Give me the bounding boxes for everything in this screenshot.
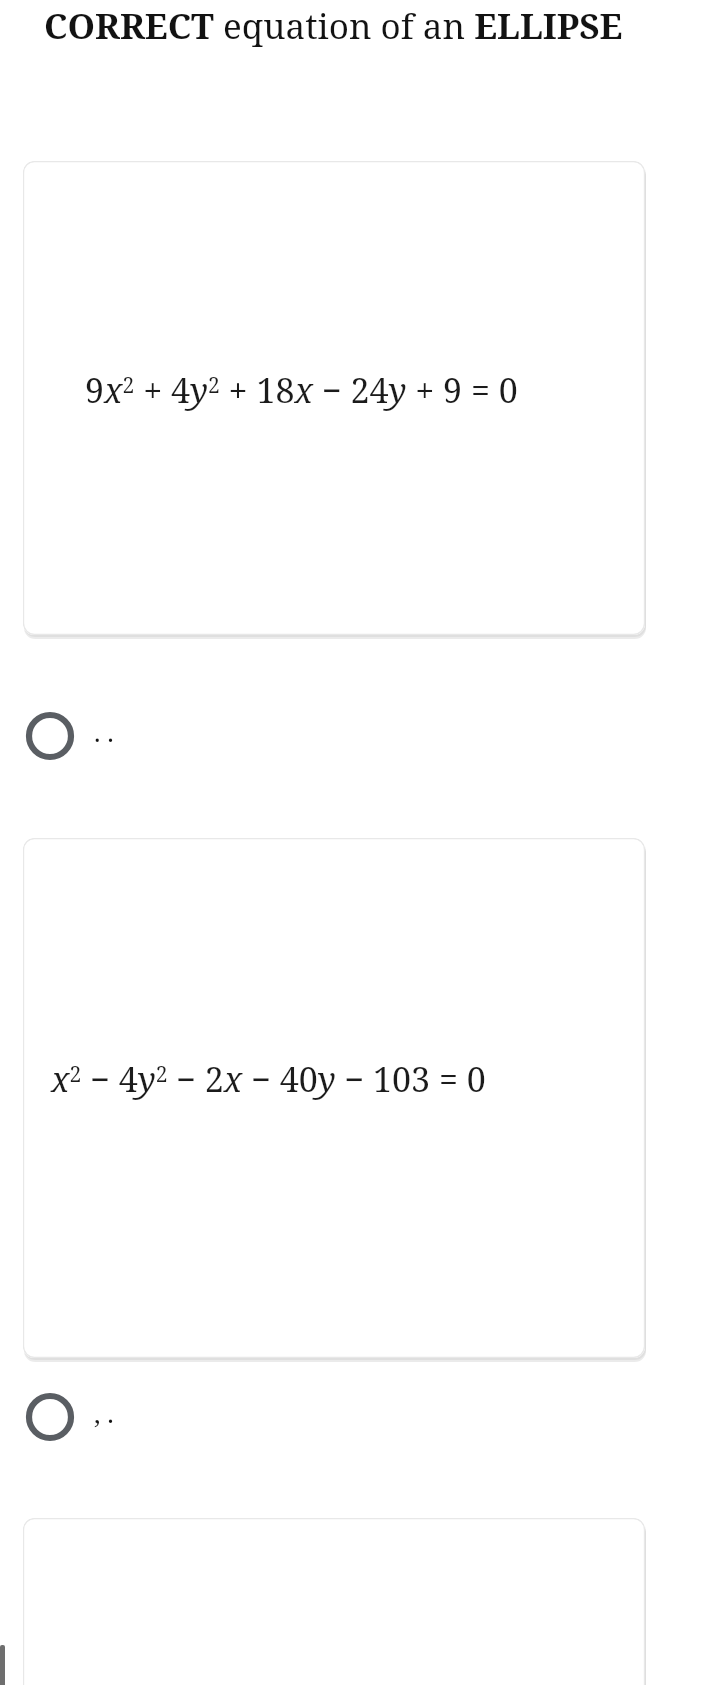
button[interactable]: 9x2 + 4y2 + 18x − 24y + 9 = 0 <box>23 161 645 635</box>
staticText: CORRECT equation of an ELLIPSE <box>44 2 623 50</box>
staticText: 9x2 + 4y2 + 18x − 24y + 9 = 0 <box>85 367 518 413</box>
button[interactable]: Select answer option <box>22 708 78 764</box>
button[interactable]: Select answer option <box>22 1389 78 1445</box>
staticText: x2 − 4y2 − 2x − 40y − 103 = 0 <box>51 1056 486 1102</box>
staticText: , . <box>94 1395 114 1430</box>
button[interactable]: x2 − 4y2 − 2x − 40y − 103 = 0 <box>23 838 645 1358</box>
staticText: . . <box>94 714 114 749</box>
